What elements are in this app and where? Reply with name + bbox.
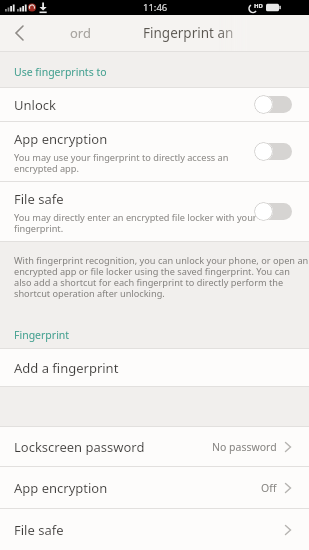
staticText: File safe <box>14 521 64 539</box>
staticText: With fingerprint recognition, you can un… <box>14 254 309 299</box>
staticText: You may directly enter an encrypted file… <box>14 211 257 234</box>
staticText: App encryption <box>14 479 108 497</box>
staticText: Lockscreen password <box>14 438 145 456</box>
staticText: App encryption <box>14 130 108 148</box>
staticText: Unlock <box>14 96 56 114</box>
staticText: Add a fingerprint <box>14 359 119 377</box>
staticText: HD <box>254 2 263 10</box>
button[interactable]: App encryption <box>0 122 309 181</box>
button[interactable]: App encryption <box>0 467 309 508</box>
staticText: Off <box>261 481 277 495</box>
button[interactable]: Add a fingerprint <box>0 349 309 386</box>
button[interactable]: File safe <box>0 182 309 241</box>
staticText: Fingerprint <box>14 328 70 342</box>
staticText: File safe <box>14 190 64 208</box>
button[interactable]: Lockscreen password <box>0 427 309 466</box>
button[interactable]: File safe <box>0 509 309 550</box>
staticText: No password <box>212 440 277 454</box>
staticText: Fingerprint an <box>143 24 234 42</box>
staticText: ord <box>70 24 91 42</box>
staticText: You may use your fingerprint to directly… <box>14 151 229 174</box>
button[interactable] <box>0 15 40 51</box>
staticText: Use fingerprints to <box>14 65 107 79</box>
button[interactable]: Unlock <box>0 88 309 121</box>
staticText: 11:46 <box>143 1 168 14</box>
